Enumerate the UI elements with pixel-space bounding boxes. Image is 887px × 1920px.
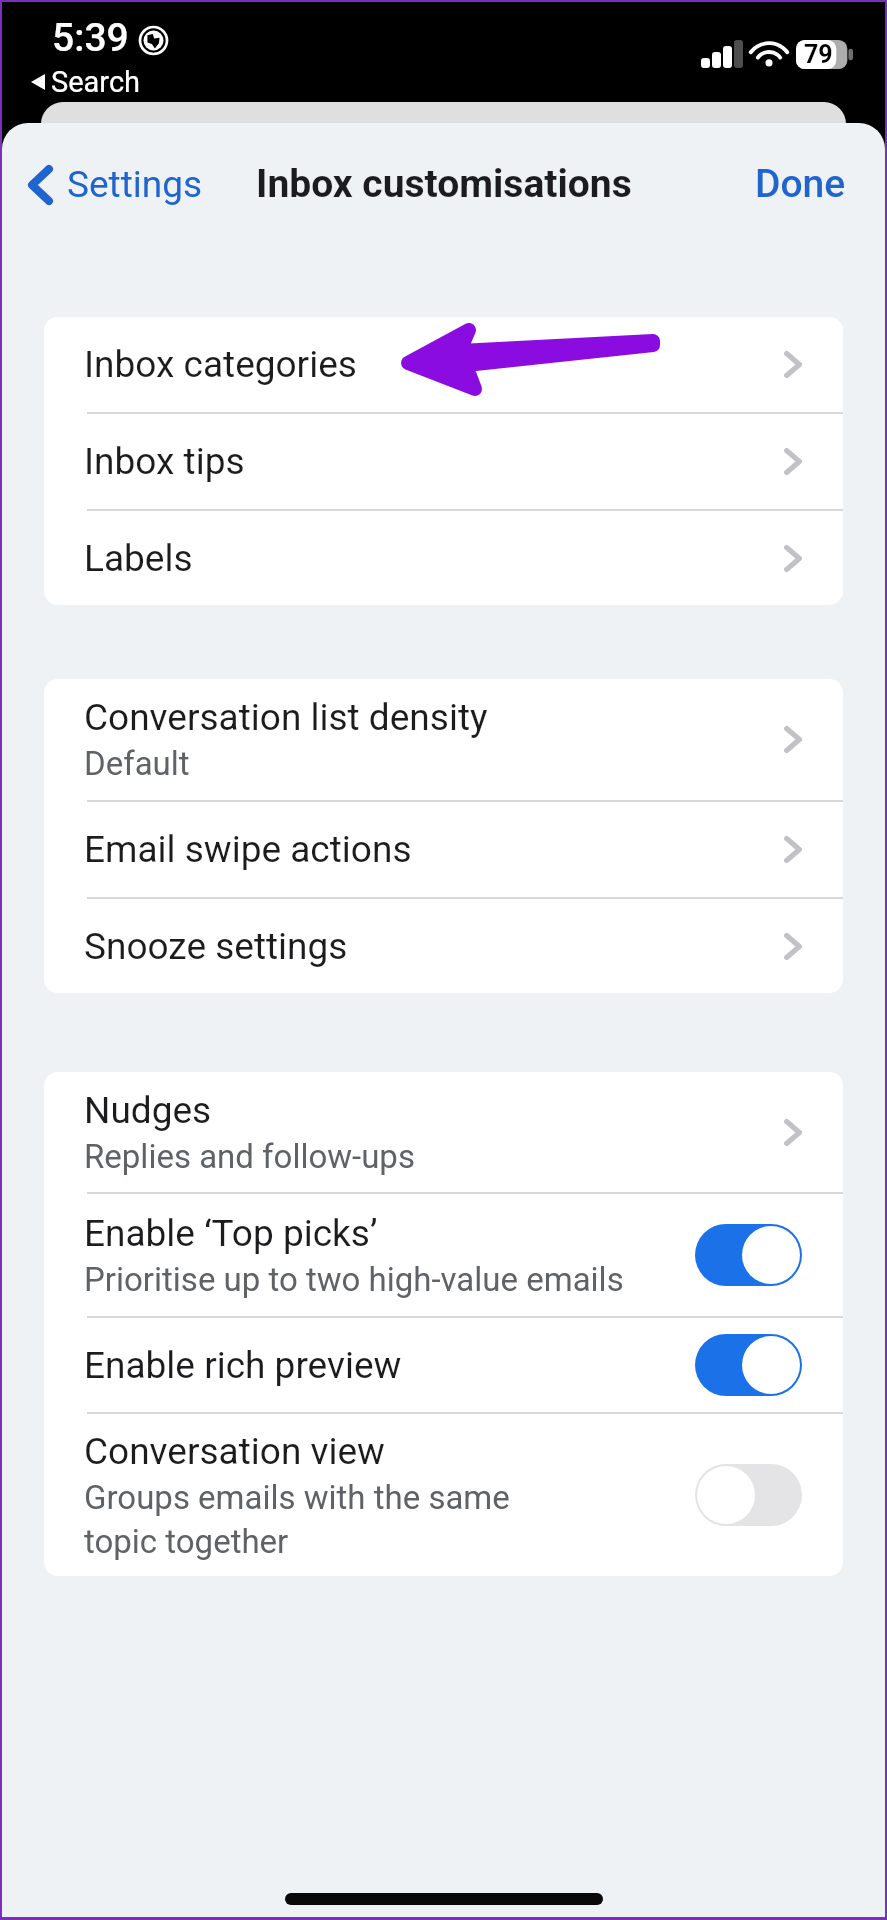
staticText: Snooze settings [84,925,348,968]
button[interactable]: Open Inbox categories [774,341,812,388]
staticText: Conversation list density [84,696,488,739]
staticText: Enable rich preview [84,1344,402,1387]
staticText: Inbox customisations [256,161,632,207]
button[interactable]: Open Email swipe actions [774,826,812,873]
staticText: Done [755,161,846,207]
button[interactable]: Enable rich preview [695,1334,802,1396]
staticText: Inbox categories [84,343,357,386]
staticText: Prioritise up to two high-value emails [84,1260,624,1299]
button[interactable]: Open Conversation list density [774,716,812,763]
button[interactable]: Conversation list density [44,679,843,800]
button[interactable]: Open Nudges [774,1109,812,1156]
staticText: Email swipe actions [84,828,412,871]
staticText: Settings [67,163,203,206]
staticText: 5:39 [52,15,129,61]
staticText: Conversation view [84,1430,385,1473]
staticText: Enable ‘Top picks’ [84,1212,378,1255]
button[interactable]: Enable rich preview [44,1318,843,1412]
staticText: Labels [84,537,193,580]
staticText: Replies and follow-ups [84,1137,415,1176]
staticText: Nudges [84,1089,212,1132]
button[interactable]: Labels [44,511,843,605]
button[interactable]: Settings [22,153,209,216]
button[interactable]: Open Inbox tips [774,438,812,485]
button[interactable]: Inbox categories [44,317,843,412]
staticText: 79 [804,40,833,69]
staticText: Search [51,65,141,99]
button[interactable]: Enable ‘Top picks’ [44,1194,843,1316]
button[interactable]: Inbox tips [44,414,843,509]
button[interactable]: Done [745,151,856,217]
button[interactable]: Enable ‘Top picks’ [695,1224,802,1286]
button[interactable]: Open Labels [774,535,812,582]
button[interactable]: Conversation view [695,1464,802,1526]
button[interactable]: Open Snooze settings [774,923,812,970]
button[interactable]: Nudges [44,1072,843,1192]
button[interactable]: Email swipe actions [44,802,843,897]
staticText: Groups emails with the same topic togeth… [84,1478,510,1561]
button[interactable]: Snooze settings [44,899,843,993]
button[interactable]: Conversation view [44,1414,843,1576]
staticText: Default [84,744,190,783]
staticText: Inbox tips [84,440,245,483]
